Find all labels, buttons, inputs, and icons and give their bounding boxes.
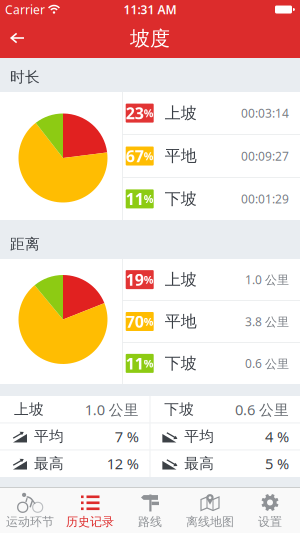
staticText: % [144,106,154,120]
staticText: 平均 [34,427,64,445]
staticText: 23 [126,102,144,124]
staticText: 运动环节 [6,514,54,529]
staticText: 5 % [265,454,289,473]
staticText: 上坡 [165,103,197,123]
staticText: Carrier [5,1,45,17]
staticText: 11 [126,188,144,209]
staticText: 平地 [165,312,197,331]
staticText: % [144,272,154,287]
staticText: % [144,314,154,329]
staticText: 7 % [115,427,139,446]
staticText: 11:31 AM [123,1,176,17]
staticText: 67 [126,145,144,167]
staticText: 平均 [184,427,214,445]
staticText: 下坡 [165,354,197,373]
button[interactable]: 设置 [240,488,300,532]
staticText: 距离 [10,235,40,253]
staticText: 1.0 公里 [85,400,139,419]
staticText: 上坡 [165,270,197,289]
staticText: 00:03:14 [241,105,289,121]
button[interactable]: 运动环节 [0,488,60,532]
staticText: 00:09:27 [241,148,289,164]
staticText: % [144,192,154,206]
staticText: 1.0 公里 [245,272,289,287]
staticText: 70 [126,311,144,332]
staticText: 历史记录 [66,514,114,529]
staticText: 3.8 公里 [245,313,289,329]
staticText: 11 [126,353,144,374]
staticText: 最高 [184,454,214,472]
button[interactable]: 路线 [120,488,180,532]
button[interactable]: 离线地图 [180,488,240,532]
staticText: 时长 [10,68,40,86]
staticText: 坡度 [130,26,170,51]
staticText: 12 % [107,454,139,473]
staticText: 0.6 公里 [245,355,289,371]
staticText: 离线地图 [186,514,234,529]
staticText: 下坡 [164,400,194,418]
staticText: 设置 [258,514,282,529]
staticText: % [144,356,154,370]
staticText: 下坡 [165,189,197,209]
staticText: 19 [126,269,144,290]
staticText: 路线 [138,514,162,529]
button[interactable]: 历史记录 [60,488,120,532]
button[interactable]: Back [0,23,25,54]
staticText: 上坡 [14,400,44,418]
staticText: 4 % [265,427,289,446]
staticText: 00:01:29 [241,191,289,207]
staticText: 最高 [34,454,64,472]
staticText: 0.6 公里 [235,400,289,419]
staticText: % [144,149,154,163]
staticText: 平地 [165,146,197,166]
